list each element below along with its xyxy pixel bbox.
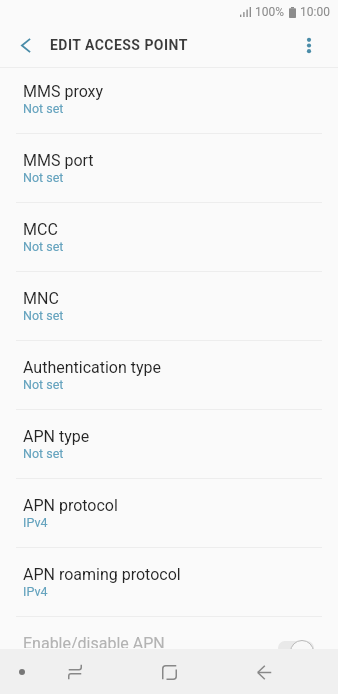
staticText: Not set <box>23 239 64 254</box>
button[interactable]: Navigate up <box>0 24 48 66</box>
staticText: Not set <box>23 377 64 392</box>
staticText: 100% <box>255 5 285 19</box>
staticText: Enable/disable APN <box>23 634 165 648</box>
staticText: MMS proxy <box>23 82 104 101</box>
button[interactable]: Back <box>242 650 286 694</box>
button[interactable]: Recents <box>53 650 97 694</box>
button[interactable]: MCC <box>0 203 338 272</box>
button[interactable]: More options <box>290 24 338 66</box>
staticText: Not set <box>23 308 64 323</box>
staticText: Not set <box>23 170 64 185</box>
staticText: IPv4 <box>23 515 48 530</box>
staticText: MMS port <box>23 151 94 170</box>
button[interactable]: APN type <box>0 410 338 479</box>
button[interactable]: MMS proxy <box>0 65 338 134</box>
button[interactable]: Home <box>147 650 191 694</box>
staticText: Not set <box>23 446 64 461</box>
staticText: EDIT ACCESS POINT <box>50 37 188 53</box>
staticText: IPv4 <box>23 584 48 599</box>
button[interactable]: MNC <box>0 272 338 341</box>
button[interactable]: APN roaming protocol <box>0 548 338 617</box>
button[interactable]: MMS port <box>0 134 338 203</box>
staticText: APN type <box>23 427 90 446</box>
button[interactable]: Hide navigation bar <box>10 660 34 684</box>
button[interactable]: APN protocol <box>0 479 338 548</box>
staticText: APN protocol <box>23 496 118 515</box>
staticText: Authentication type <box>23 358 162 377</box>
staticText: MCC <box>23 220 58 239</box>
staticText: MNC <box>23 289 59 308</box>
staticText: Not set <box>23 101 64 116</box>
button[interactable]: Enable/disable APN <box>0 617 338 648</box>
staticText: APN roaming protocol <box>23 565 181 584</box>
staticText: 10:00 <box>300 5 330 19</box>
button[interactable]: Authentication type <box>0 341 338 410</box>
